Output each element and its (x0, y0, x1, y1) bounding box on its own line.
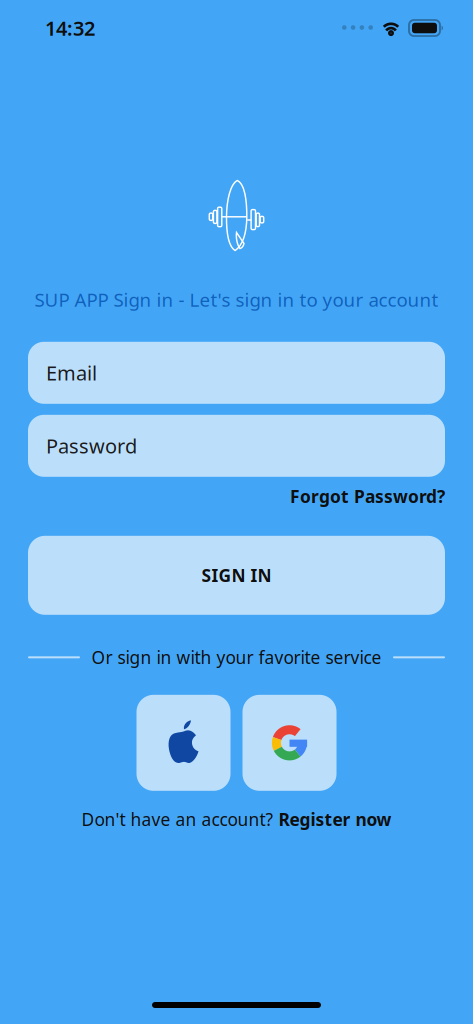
button[interactable]: Password (28, 415, 445, 477)
staticText: 14:32 (45, 15, 95, 41)
staticText: Don't have an account? (81, 808, 273, 831)
staticText: Password (46, 432, 137, 459)
button[interactable]: Sign in with Apple (136, 695, 230, 791)
button[interactable]: Forgot Password? (290, 485, 445, 508)
staticText: SUP APP Sign in - Let's sign in to your … (34, 287, 438, 312)
staticText: Email (46, 359, 97, 386)
button[interactable]: Email (28, 342, 445, 404)
button[interactable]: SIGN IN (28, 536, 445, 615)
staticText: SIGN IN (201, 564, 271, 587)
staticText: Forgot Password? (290, 485, 445, 508)
button[interactable]: Sign in with Google (242, 695, 336, 791)
staticText: Register now (278, 808, 391, 831)
staticText: Or sign in with your favorite service (91, 646, 381, 669)
button[interactable]: Register now (278, 808, 391, 831)
